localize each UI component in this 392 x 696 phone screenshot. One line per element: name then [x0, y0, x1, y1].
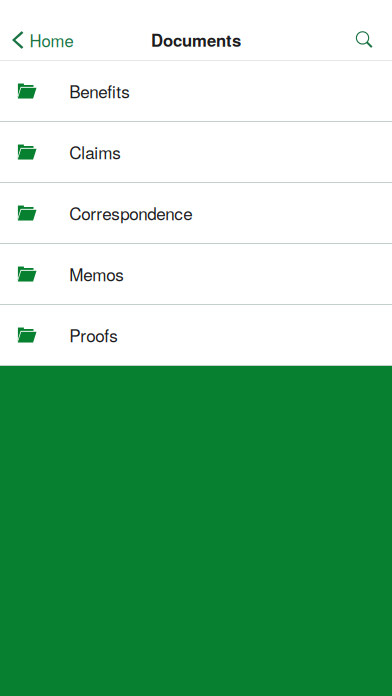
staticText: Claims — [69, 140, 121, 164]
button[interactable]: Home — [0, 20, 83, 60]
button[interactable]: Proofs — [0, 305, 392, 366]
button[interactable]: Search — [342, 20, 392, 60]
staticText: Proofs — [69, 323, 118, 347]
staticText: Home — [29, 28, 73, 52]
staticText: Documents — [151, 28, 241, 52]
staticText: Memos — [69, 262, 124, 286]
staticText: Correspondence — [69, 201, 192, 225]
button[interactable]: Benefits — [0, 61, 392, 122]
staticText: Benefits — [69, 79, 130, 103]
button[interactable]: Claims — [0, 122, 392, 183]
button[interactable]: Memos — [0, 244, 392, 305]
button[interactable]: Correspondence — [0, 183, 392, 244]
